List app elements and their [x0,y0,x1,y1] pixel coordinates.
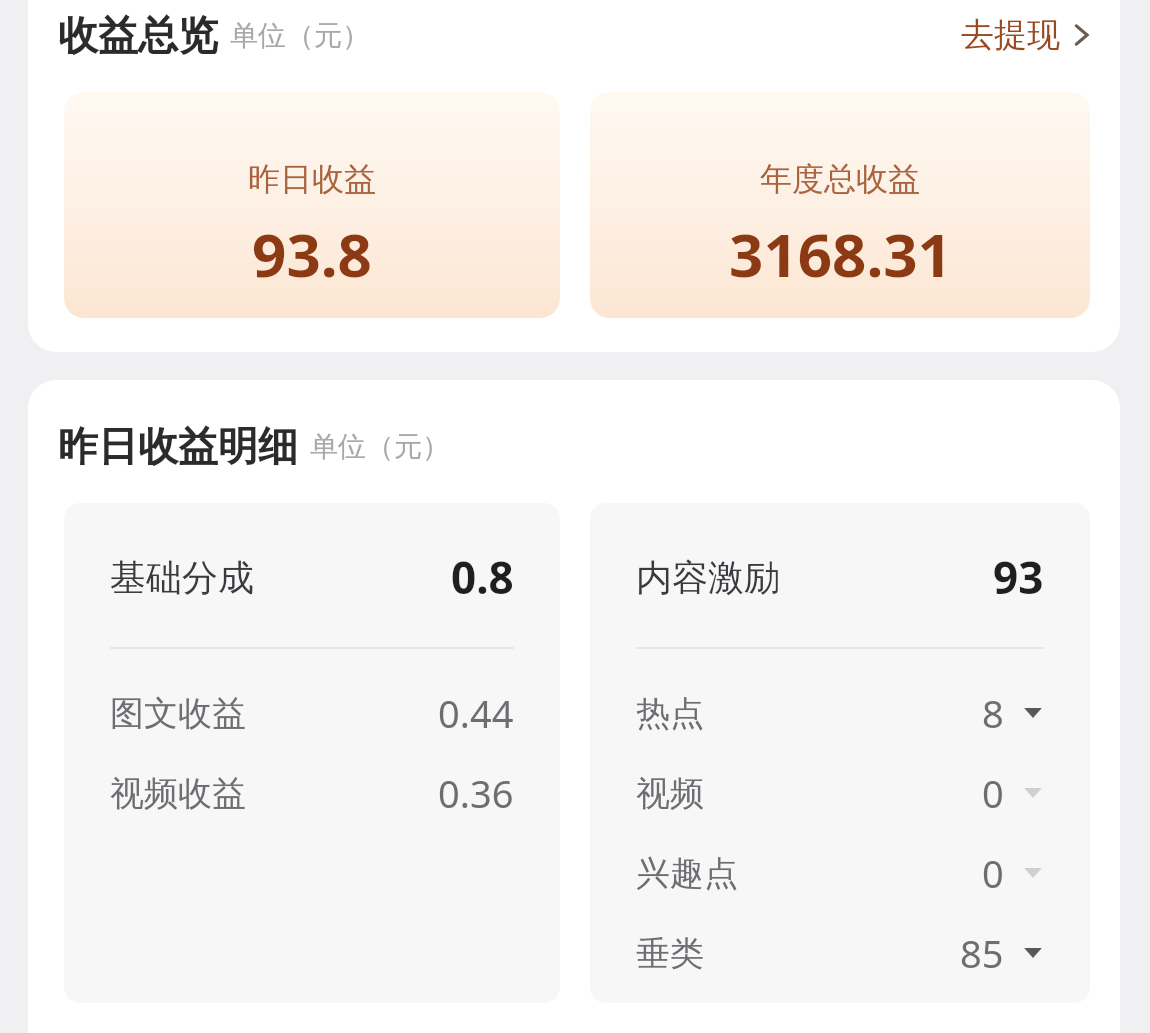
staticText: 图文收益 [110,692,246,735]
button[interactable]: 图文收益 [64,673,560,753]
button[interactable]: 年度总收益 [590,92,1090,318]
staticText: 去提现 [961,14,1060,56]
staticText: 内容激励 [636,555,780,600]
staticText: 0.36 [438,767,514,819]
staticText: 收益总览 [58,10,218,60]
staticText: 8 [982,687,1004,739]
other: Trend indicator [1022,785,1044,801]
staticText: 基础分成 [110,555,254,600]
button[interactable]: 去提现 [955,8,1096,62]
staticText: 热点 [636,692,704,735]
button[interactable]: 兴趣点 [590,833,1090,913]
staticText: 兴趣点 [636,852,738,895]
staticText: 0 [982,767,1004,819]
staticText: 垂类 [636,932,704,975]
other: Trend indicator [1022,865,1044,881]
staticText: 昨日收益 [248,159,376,199]
staticText: 85 [960,927,1004,979]
other: Trend indicator [1022,705,1044,721]
staticText: 视频收益 [110,772,246,815]
button[interactable]: 基础分成 [64,503,560,1003]
other: Trend indicator [1022,945,1044,961]
staticText: 单位（元） [310,429,450,464]
button[interactable]: 内容激励 [590,503,1090,1003]
staticText: 0.44 [438,687,514,739]
staticText: 昨日收益明细 [58,421,298,471]
staticText: 3168.31 [729,213,952,295]
button[interactable]: 热点 [590,673,1090,753]
button[interactable]: 垂类 [590,913,1090,993]
staticText: 0.8 [451,547,514,607]
button[interactable]: 视频收益 [64,753,560,833]
staticText: 93.8 [252,213,372,295]
staticText: 93 [993,547,1044,607]
staticText: 视频 [636,772,704,815]
staticText: 0 [982,847,1004,899]
staticText: 单位（元） [230,18,370,53]
staticText: 年度总收益 [760,159,920,199]
button[interactable]: 视频 [590,753,1090,833]
button[interactable]: 昨日收益 [64,92,560,318]
